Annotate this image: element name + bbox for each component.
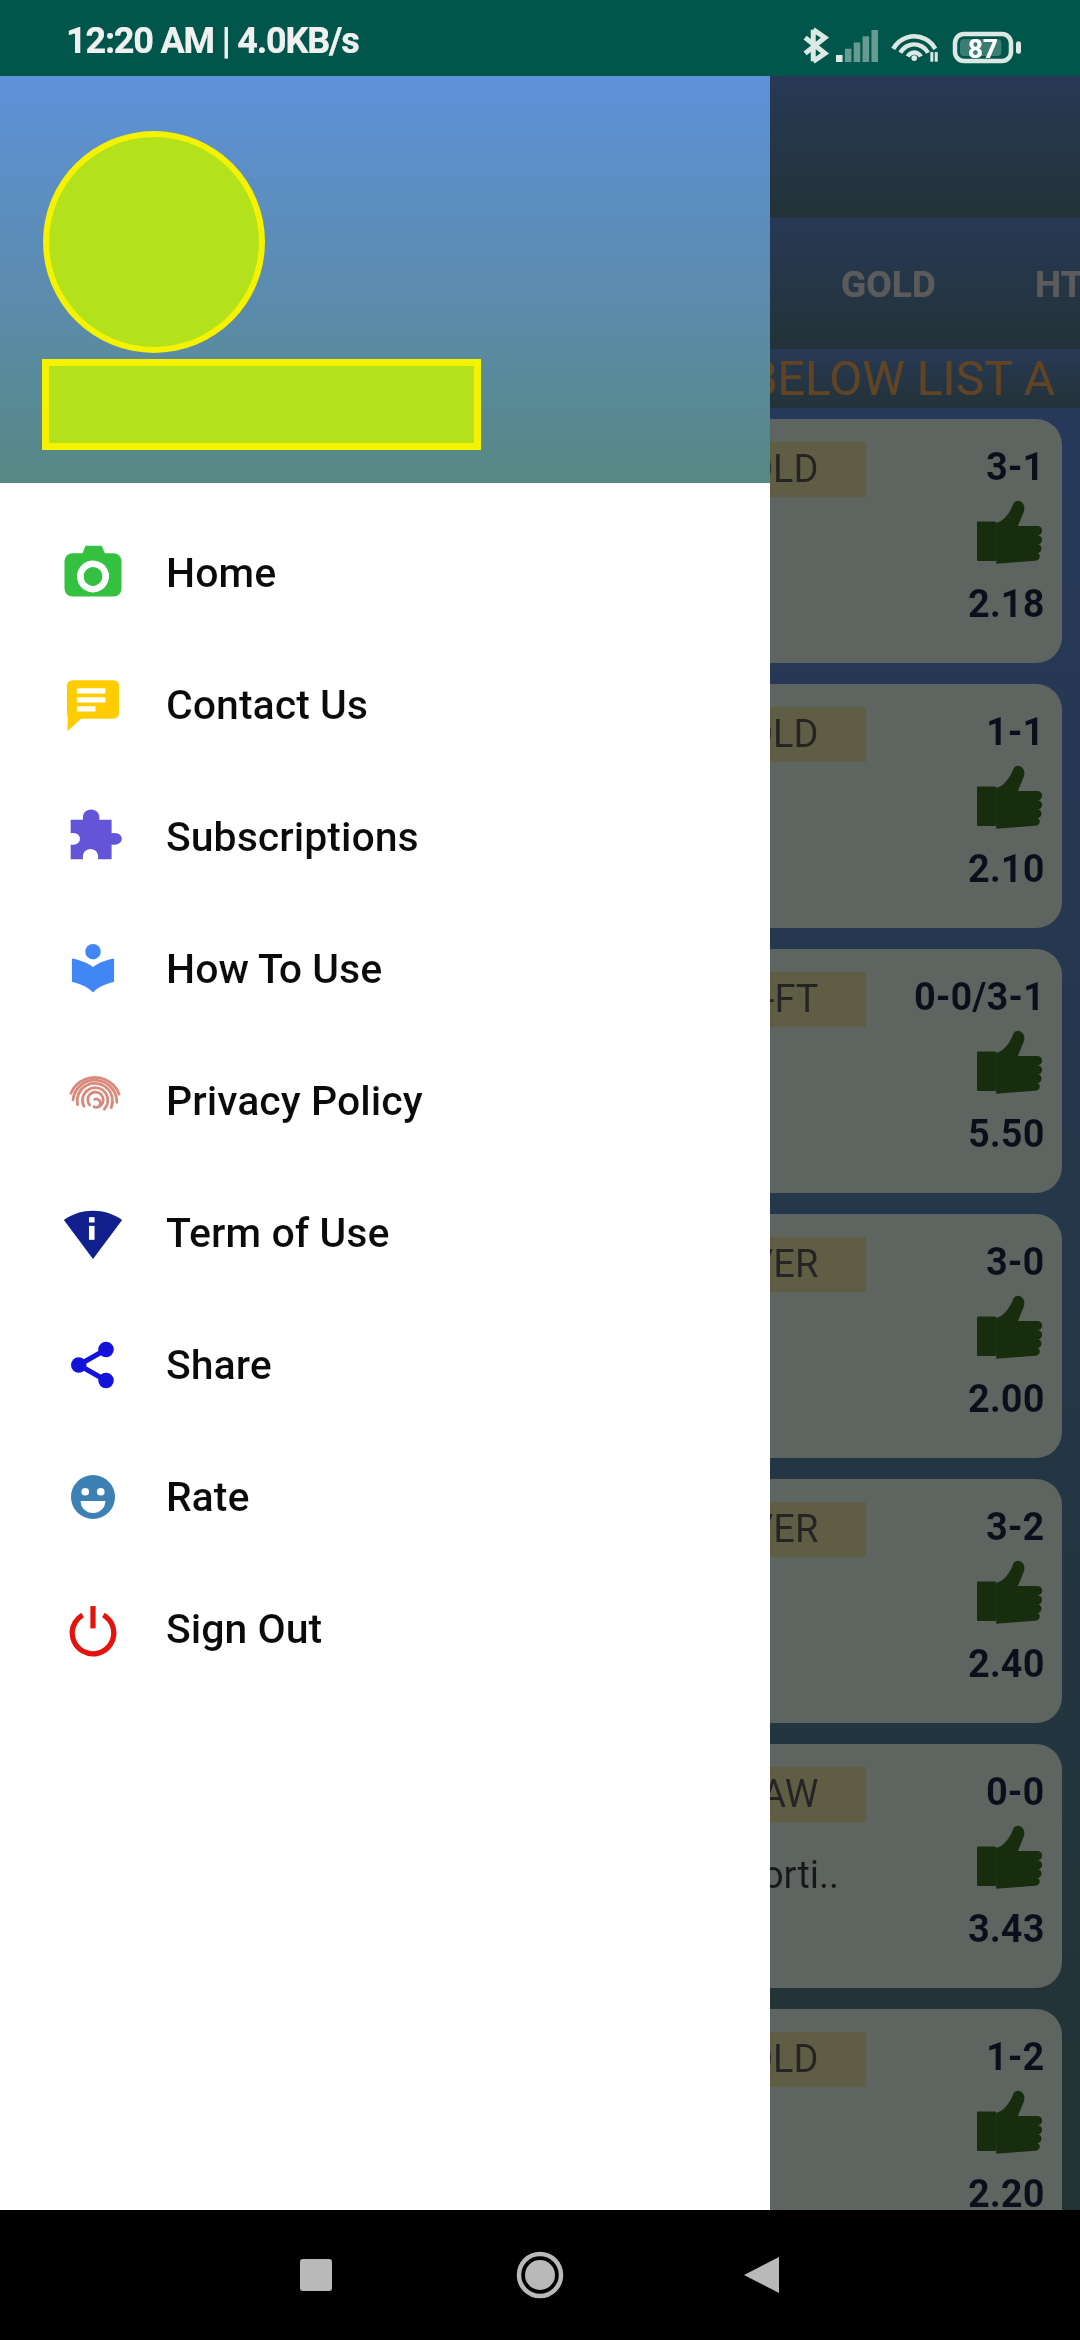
staticText: 0-0/3-1 [914,975,1045,1020]
button[interactable]: Rate [0,1431,770,1563]
staticText: GOLD [841,263,936,306]
staticText: HT-FT [719,977,819,1022]
staticText: GOLD [721,2037,819,2082]
staticText: Home [166,549,277,597]
staticText: 2.18 [968,582,1045,627]
staticText: 3-0 [986,1240,1045,1285]
staticText: Sporti.. [718,1853,840,1898]
staticText: HT-FT [1035,263,1080,306]
staticText: 2.00 [968,1377,1045,1422]
button[interactable]: Term of Use [0,1167,770,1299]
staticText: 12:20 AM | 4.0KB/s [66,20,359,62]
staticText: Sign Out [166,1605,323,1653]
staticText: 3-1 [986,445,1045,490]
staticText: Term of Use [166,1209,390,1257]
staticText: 1-1 [986,710,1045,755]
button[interactable]: HT-FT [18,949,1062,1193]
staticText: 2.10 [968,847,1045,892]
staticText: DRAW [713,1772,819,1817]
staticText: 87 [968,34,998,64]
button[interactable]: GOLD [18,2009,1062,2253]
staticText: 0-0 [986,1770,1045,1815]
button[interactable]: Share [0,1299,770,1431]
button[interactable]: Sign Out [0,1563,770,1695]
staticText: 3-2 [986,1505,1045,1550]
staticText: Subscriptions [166,813,419,861]
button[interactable]: GOLD [18,684,1062,928]
button[interactable]: SILVER [18,1479,1062,1723]
staticText: Privacy Policy [166,1077,423,1125]
staticText: SILVER [699,1507,819,1552]
staticText: Share [166,1341,272,1389]
staticText: 5.50 [968,1112,1045,1157]
button[interactable]: How To Use [0,903,770,1035]
button[interactable]: Privacy Policy [0,1035,770,1167]
button[interactable]: DRAW [18,1744,1062,1988]
staticText: Rate [166,1473,250,1521]
staticText: 2.20 [968,2172,1045,2217]
button[interactable]: SILVER [18,1214,1062,1458]
button[interactable]: Home [0,507,770,639]
staticText: 2.40 [968,1642,1045,1687]
button[interactable]: Subscriptions [0,771,770,903]
staticText: GOLD [721,447,819,492]
staticText: 1-2 [986,2035,1045,2080]
staticText: Contact Us [166,681,369,729]
button[interactable]: Contact Us [0,639,770,771]
staticText: GOLD [721,712,819,757]
button[interactable]: GOLD [18,419,1062,663]
staticText: ALL MATCHES BELOW LIST A [421,350,1056,406]
other: Mobile signal [836,30,878,62]
staticText: How To Use [166,945,383,993]
other: Wi-Fi [894,29,938,62]
staticText: 3.43 [968,1907,1045,1952]
other: Bluetooth [804,29,826,62]
staticText: SILVER [699,1242,819,1287]
